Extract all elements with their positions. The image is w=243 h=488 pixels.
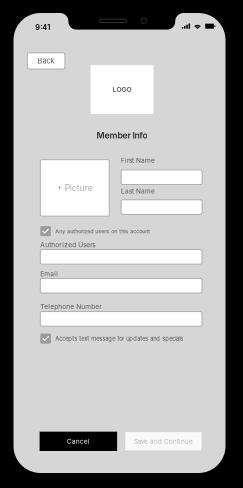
button[interactable]: Save and Continue bbox=[125, 432, 202, 451]
button[interactable]: Any authorized users on this account bbox=[40, 226, 150, 236]
staticText: + Picture bbox=[57, 183, 93, 193]
staticText: First Name bbox=[121, 156, 155, 164]
staticText: Telephone Number bbox=[40, 303, 101, 311]
button[interactable]: Cancel bbox=[40, 432, 117, 451]
staticText: Any authorized users on this account bbox=[55, 228, 150, 234]
staticText: Email bbox=[40, 270, 58, 278]
button[interactable]: Back bbox=[27, 53, 65, 69]
staticText: Save and Continue bbox=[134, 437, 193, 445]
staticText: Back bbox=[38, 56, 55, 65]
staticText: LOGO bbox=[112, 85, 131, 94]
button[interactable]: Accepts text message for updates and spe… bbox=[40, 333, 183, 344]
staticText: Cancel bbox=[67, 437, 90, 445]
staticText: Last Name bbox=[121, 187, 155, 195]
staticText: Authorized Users bbox=[40, 241, 95, 249]
staticText: Member Info bbox=[96, 130, 147, 141]
staticText: 9:41 bbox=[35, 23, 50, 32]
staticText: Accepts text message for updates and spe… bbox=[55, 335, 183, 342]
